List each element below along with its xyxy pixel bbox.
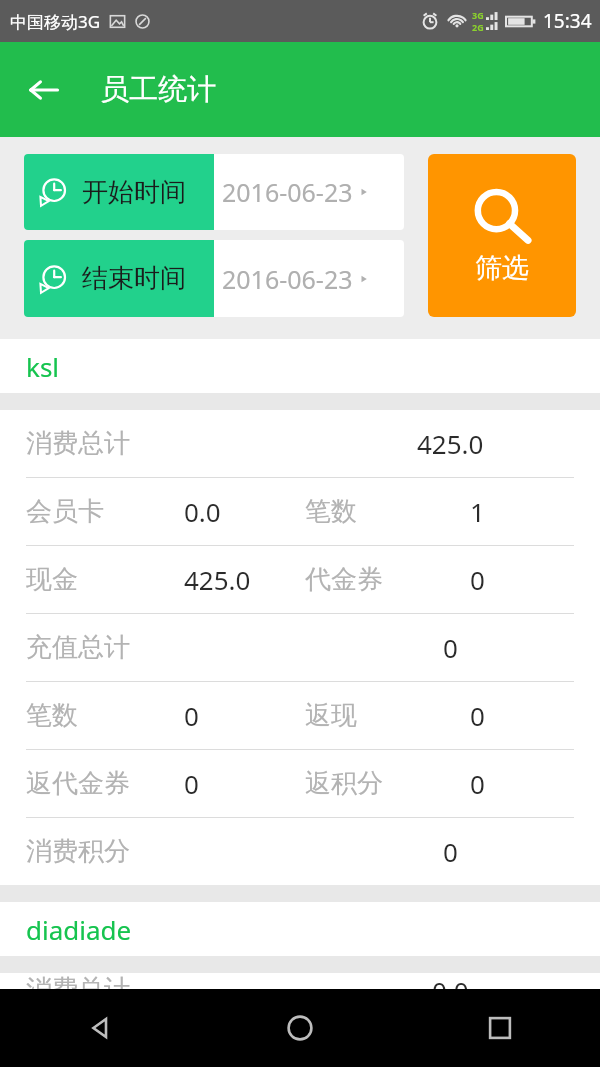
button[interactable]: 笔数 xyxy=(0,682,600,749)
staticText: 返积分 xyxy=(305,767,383,800)
staticText: 0.0 xyxy=(184,494,221,529)
button[interactable]: Home xyxy=(200,989,400,1067)
button[interactable]: Back xyxy=(0,989,200,1067)
staticText: 消费总计 xyxy=(26,427,130,460)
staticText: 返代金券 xyxy=(26,767,130,800)
button[interactable]: 充值总计 xyxy=(0,614,600,681)
staticText: 15:34 xyxy=(543,8,592,34)
staticText: 员工统计 xyxy=(100,71,216,108)
staticText: 425.0 xyxy=(184,562,251,597)
staticText: 2G xyxy=(472,21,484,33)
staticText: 0.0 xyxy=(432,973,469,989)
button[interactable]: 消费积分 xyxy=(0,818,600,885)
staticText: diadiade xyxy=(26,912,132,947)
staticText: 消费积分 xyxy=(26,835,130,868)
staticText: 0 xyxy=(470,562,485,597)
button[interactable]: 消费总计 xyxy=(0,410,600,477)
staticText: 代金券 xyxy=(305,563,383,596)
staticText: 425.0 xyxy=(417,426,484,461)
staticText: 0 xyxy=(184,698,199,733)
button[interactable]: Back xyxy=(18,64,70,116)
staticText: 笔数 xyxy=(305,495,357,528)
staticText: 消费总计 xyxy=(26,973,130,989)
button[interactable]: 结束时间 xyxy=(24,240,404,317)
staticText: 返现 xyxy=(305,699,357,732)
button[interactable]: 返代金券 xyxy=(0,750,600,817)
staticText: 筛选 xyxy=(475,251,529,285)
button[interactable]: 会员卡 xyxy=(0,478,600,545)
staticText: 2016-06-23 xyxy=(222,262,353,296)
button[interactable]: 筛选 xyxy=(428,154,576,317)
staticText: 0 xyxy=(443,834,458,869)
staticText: ksl xyxy=(26,349,60,384)
button[interactable]: diadiade xyxy=(0,902,600,956)
staticText: 0 xyxy=(470,766,485,801)
button[interactable]: 消费总计 xyxy=(0,973,600,989)
staticText: 开始时间 xyxy=(82,176,186,209)
staticText: 结束时间 xyxy=(82,262,186,295)
staticText: 0 xyxy=(443,630,458,665)
staticText: 充值总计 xyxy=(26,631,130,664)
staticText: 0 xyxy=(470,698,485,733)
staticText: 中国移动3G xyxy=(10,10,101,33)
staticText: 3G xyxy=(472,9,484,21)
button[interactable]: 现金 xyxy=(0,546,600,613)
staticText: 笔数 xyxy=(26,699,78,732)
button[interactable]: ksl xyxy=(0,339,600,393)
staticText: 1 xyxy=(470,494,485,529)
staticText: 0 xyxy=(184,766,199,801)
staticText: 现金 xyxy=(26,563,78,596)
button[interactable]: 开始时间 xyxy=(24,154,404,230)
staticText: 2016-06-23 xyxy=(222,175,353,209)
staticText: 会员卡 xyxy=(26,495,104,528)
button[interactable]: Recent apps xyxy=(400,989,600,1067)
